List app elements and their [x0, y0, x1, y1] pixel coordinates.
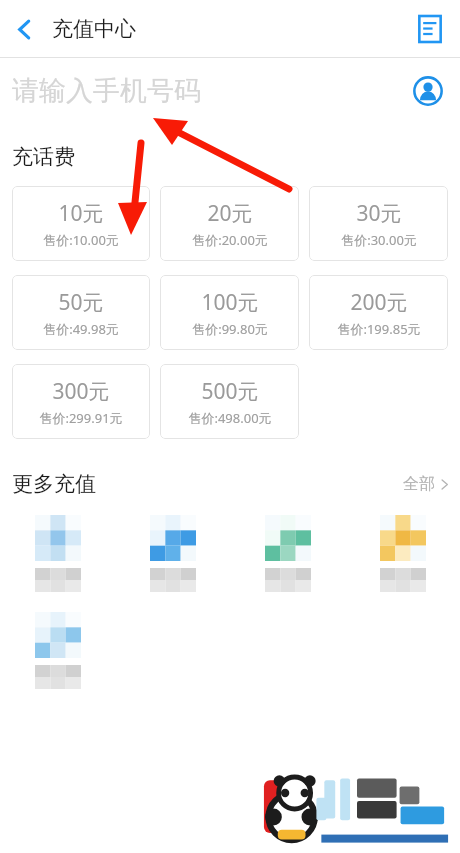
staticText: 更多充值: [12, 471, 96, 497]
staticText: 500元: [201, 377, 259, 406]
button[interactable]: Contacts: [408, 71, 448, 111]
staticText: 请输入手机号码: [12, 74, 201, 108]
staticText: 充值中心: [52, 16, 136, 42]
staticText: 售价:99.80元: [192, 320, 268, 338]
staticText: 售价:30.00元: [341, 231, 417, 249]
staticText: 10元: [58, 199, 104, 228]
button[interactable]: Records: [410, 9, 450, 49]
staticText: 售价:10.00元: [43, 231, 119, 249]
button[interactable]: Back: [2, 7, 46, 51]
button[interactable]: [115, 515, 230, 592]
button[interactable]: [0, 612, 115, 689]
button[interactable]: 20元: [160, 186, 299, 261]
staticText: 售价:299.91元: [39, 409, 123, 427]
button[interactable]: 10元: [12, 186, 150, 261]
staticText: 全部: [403, 474, 435, 494]
staticText: 200元: [350, 288, 408, 317]
button[interactable]: 全部: [403, 474, 450, 494]
staticText: 300元: [52, 377, 110, 406]
button[interactable]: 500元: [160, 364, 299, 439]
staticText: 30元: [356, 199, 402, 228]
button[interactable]: 200元: [309, 275, 448, 350]
staticText: 售价:498.00元: [188, 409, 272, 427]
button[interactable]: [230, 515, 345, 592]
staticText: 售价:199.85元: [337, 320, 421, 338]
button[interactable]: 50元: [12, 275, 150, 350]
button[interactable]: [345, 515, 460, 592]
button[interactable]: [0, 515, 115, 592]
staticText: 售价:20.00元: [192, 231, 268, 249]
button[interactable]: 30元: [309, 186, 448, 261]
staticText: 50元: [58, 288, 104, 317]
staticText: 20元: [207, 199, 253, 228]
staticText: 100元: [201, 288, 259, 317]
button[interactable]: 100元: [160, 275, 299, 350]
staticText: 售价:49.98元: [43, 320, 119, 338]
button[interactable]: 300元: [12, 364, 150, 439]
staticText: 充话费: [12, 144, 75, 170]
